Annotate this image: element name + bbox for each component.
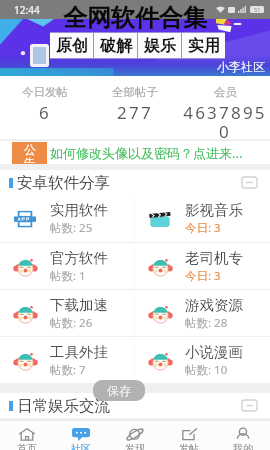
- button[interactable]: 小说漫画: [135, 337, 270, 383]
- staticText: 老司机专: [185, 249, 243, 267]
- button[interactable]: 首页: [0, 421, 54, 450]
- staticText: 工具外挂: [50, 343, 108, 361]
- staticText: 安卓软件分享: [17, 173, 110, 193]
- staticText: 实用: [188, 36, 220, 56]
- staticText: 帖数: 7: [50, 362, 86, 378]
- button[interactable]: 折叠: [242, 177, 257, 188]
- staticText: 发帖: [179, 442, 199, 450]
- staticText: 帖数: 1: [50, 268, 86, 284]
- staticText: 公告: [23, 142, 37, 164]
- staticText: 小李社区: [217, 59, 265, 74]
- staticText: 官方软件: [50, 249, 108, 267]
- staticText: 会员: [214, 85, 237, 99]
- button[interactable]: 全网软件合集: [0, 19, 270, 76]
- staticText: 发现: [125, 442, 145, 450]
- staticText: 下载加速: [50, 296, 108, 314]
- staticText: 51: [254, 6, 261, 13]
- button[interactable]: 社区: [54, 421, 108, 450]
- staticText: 首页: [17, 442, 37, 450]
- staticText: 游戏资源: [185, 296, 243, 314]
- button[interactable]: 娱乐: [138, 32, 181, 59]
- button[interactable]: 公告: [0, 141, 270, 164]
- staticText: 我的: [233, 442, 253, 450]
- button[interactable]: 老司机专: [135, 243, 270, 289]
- staticText: 帖数: 26: [50, 315, 93, 331]
- staticText: 今日: 3: [185, 220, 221, 236]
- button[interactable]: 我的: [216, 421, 270, 450]
- staticText: 保存: [107, 383, 131, 398]
- staticText: 全网软件合集: [0, 3, 270, 33]
- button[interactable]: 折叠: [242, 400, 257, 411]
- button[interactable]: 发现: [108, 421, 162, 450]
- staticText: 帖数: 10: [185, 362, 228, 378]
- staticText: 全部帖子: [112, 85, 158, 99]
- staticText: 破解: [100, 36, 132, 56]
- staticText: 如何修改头像以及密码？点进来...: [50, 144, 243, 162]
- button[interactable]: 影视音乐: [135, 195, 270, 242]
- staticText: 日常娱乐交流: [17, 396, 110, 416]
- button[interactable]: 下载加速: [0, 290, 134, 336]
- staticText: 影视音乐: [185, 201, 243, 219]
- button[interactable]: 工具外挂: [0, 337, 134, 383]
- staticText: 原创: [56, 36, 88, 56]
- button[interactable]: 发帖: [162, 421, 216, 450]
- button[interactable]: 游戏资源: [135, 290, 270, 336]
- staticText: 小说漫画: [185, 343, 243, 361]
- button[interactable]: 实用软件: [0, 195, 134, 242]
- staticText: 12:44: [14, 3, 40, 17]
- staticText: 娱乐: [144, 36, 176, 56]
- staticText: 277: [90, 101, 180, 124]
- staticText: 帖数: 25: [50, 220, 93, 236]
- button[interactable]: 破解: [94, 32, 137, 59]
- staticText: 46378950: [180, 101, 270, 139]
- button[interactable]: 原创: [50, 32, 93, 59]
- staticText: 帖数: 28: [185, 315, 228, 331]
- staticText: 今日发帖: [22, 85, 68, 99]
- button[interactable]: 官方软件: [0, 243, 134, 289]
- staticText: 社区: [71, 442, 91, 450]
- staticText: 6: [0, 101, 90, 124]
- staticText: 今日: 3: [185, 268, 221, 284]
- staticText: 实用软件: [50, 201, 108, 219]
- button[interactable]: 实用: [182, 32, 225, 59]
